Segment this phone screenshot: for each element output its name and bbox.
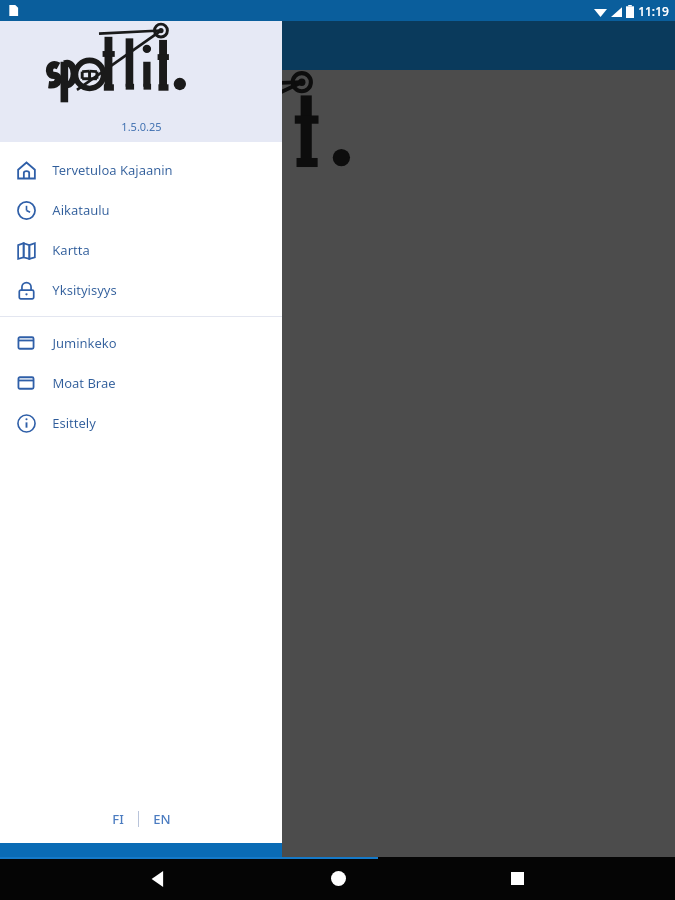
staticText: 1.5.0.25 — [121, 119, 162, 134]
button[interactable]: Aikataulu — [0, 190, 282, 230]
staticText: Esittely — [52, 414, 96, 432]
button[interactable]: KIRJAUDU ULOS — [0, 843, 282, 878]
staticText: Tervetuloa Kajaanin — [52, 161, 173, 179]
button[interactable]: Juminkeko — [0, 323, 282, 363]
staticText: Aikataulu — [52, 201, 110, 219]
staticText: KIRJAUDU ULOS — [94, 853, 189, 869]
button[interactable]: Kartta — [0, 230, 282, 270]
staticText: Kartta — [52, 241, 90, 259]
staticText: EN — [153, 810, 171, 828]
button[interactable]: Yksityisyys — [0, 270, 282, 310]
button[interactable]: Recent apps — [495, 857, 539, 900]
staticText: FI — [112, 810, 124, 828]
staticText: Yksityisyys — [52, 281, 117, 299]
staticText: 11:19 — [638, 3, 669, 19]
button[interactable]: Home — [316, 857, 360, 900]
button[interactable]: Tervetuloa Kajaanin — [0, 150, 282, 190]
staticText: Juminkeko — [52, 334, 117, 352]
button[interactable]: Esittely — [0, 403, 282, 443]
button[interactable]: Back — [136, 857, 180, 900]
staticText: Moat Brae — [52, 374, 116, 392]
button[interactable]: Moat Brae — [0, 363, 282, 403]
button[interactable]: FI — [98, 804, 138, 834]
button[interactable]: EN — [139, 804, 185, 834]
